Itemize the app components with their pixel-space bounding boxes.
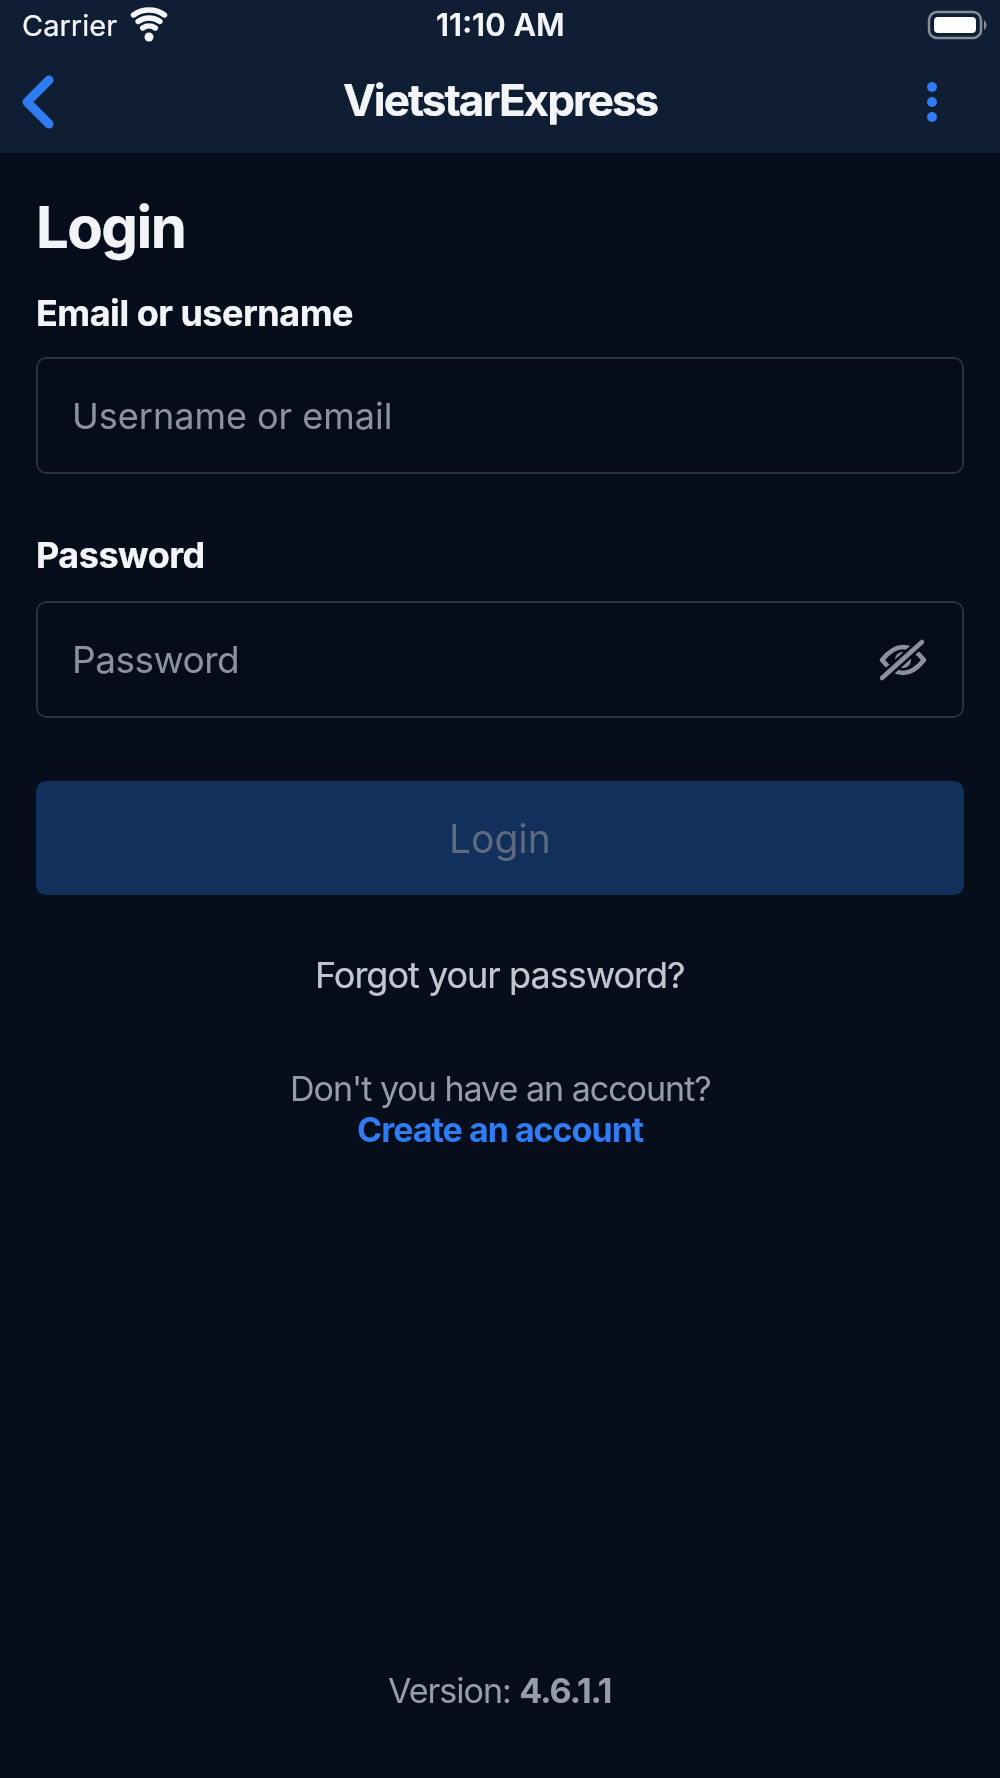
staticText: Login <box>449 815 551 862</box>
button[interactable] <box>880 640 926 680</box>
button[interactable]: Create an account <box>357 1109 644 1150</box>
button[interactable]: Username or email <box>36 357 964 474</box>
staticText: Email or username <box>36 291 353 335</box>
button[interactable]: Password <box>36 601 964 718</box>
button[interactable] <box>910 80 954 124</box>
staticText: VietstarExpress <box>343 73 658 126</box>
staticText: Username or email <box>72 394 393 438</box>
staticText: Don't you have an account? <box>290 1068 711 1109</box>
staticText: Version: 4.6.1.1 <box>388 1670 612 1711</box>
staticText: Password <box>36 533 205 577</box>
staticText: 11:10 AM <box>436 6 565 44</box>
button[interactable]: Forgot your password? <box>315 953 685 997</box>
staticText: Login <box>36 192 186 262</box>
button[interactable] <box>10 74 66 130</box>
button[interactable]: Login <box>36 781 964 895</box>
staticText: Password <box>72 637 240 682</box>
staticText: Carrier <box>22 8 118 43</box>
